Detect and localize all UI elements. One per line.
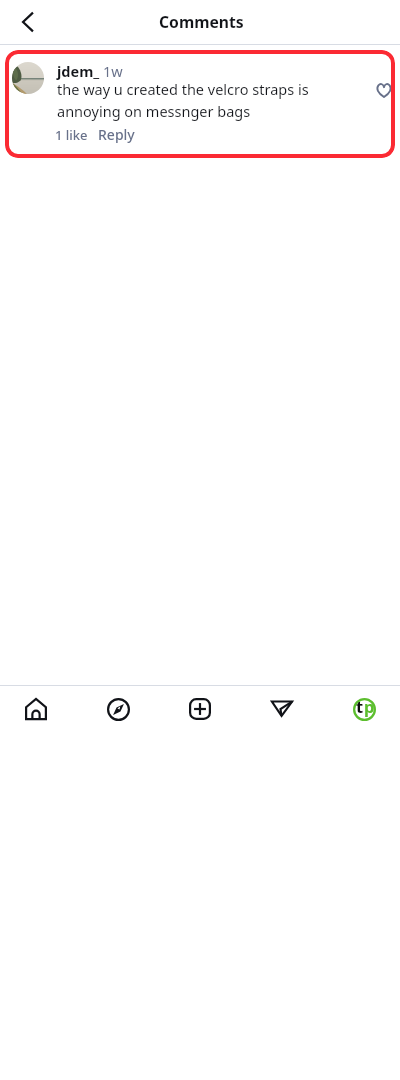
button[interactable]: jdem_ profile photo — [5, 50, 395, 158]
button[interactable]: Like — [374, 80, 394, 100]
button[interactable]: 1 like — [55, 126, 88, 144]
button[interactable]: jdem_ profile photo — [12, 62, 44, 94]
button[interactable]: Explore — [96, 687, 140, 731]
button[interactable]: Create — [178, 687, 222, 731]
staticText: 1w — [103, 61, 123, 81]
button[interactable]: Home — [14, 687, 58, 731]
staticText: jdem_ — [57, 61, 100, 81]
staticText: Comments — [159, 11, 244, 32]
button[interactable]: Back — [8, 2, 48, 42]
staticText: t — [356, 695, 364, 717]
staticText: p — [364, 695, 375, 717]
button[interactable]: Profile — [342, 687, 386, 731]
staticText: the way u created the velcro straps is a… — [57, 79, 309, 121]
button[interactable]: Reply — [98, 125, 135, 144]
button[interactable]: Messages — [260, 687, 304, 731]
